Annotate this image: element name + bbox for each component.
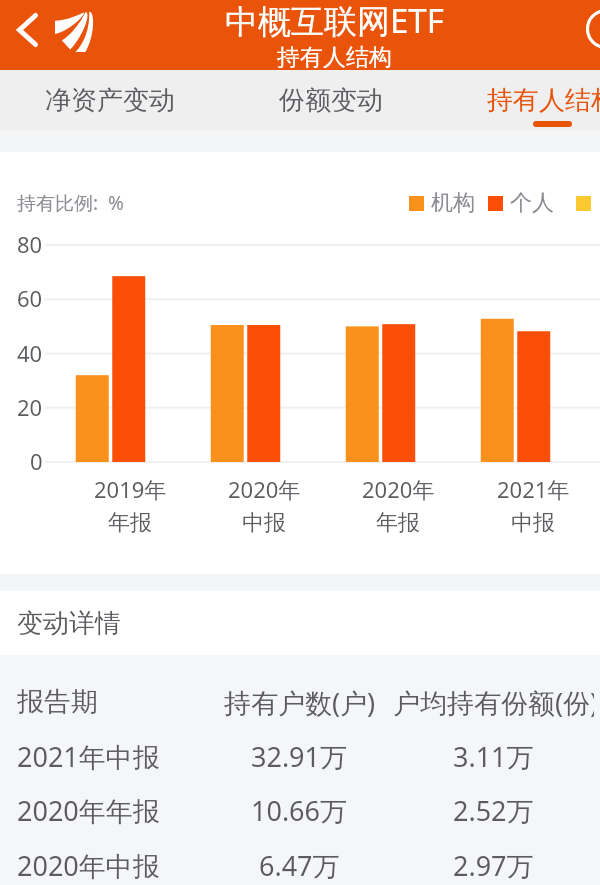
button[interactable]: 报告期 — [0, 675, 600, 729]
staticText: 2020年 — [362, 474, 435, 504]
staticText: 2020年中报 — [17, 847, 160, 884]
staticText: 报告期 — [17, 685, 98, 719]
staticText: 持有人结构 — [487, 84, 600, 117]
staticText: 个人 — [510, 189, 554, 217]
staticText: 80 — [17, 229, 43, 259]
button[interactable]: 份额变动 — [241, 70, 421, 130]
staticText: 中报 — [242, 509, 286, 537]
button[interactable]: 2020年中报 — [0, 838, 600, 885]
staticText: 中报 — [511, 509, 555, 537]
button[interactable]: 2020年年报 — [0, 783, 600, 837]
button[interactable]: Back — [7, 10, 47, 50]
staticText: 3.11万 — [453, 738, 534, 775]
button[interactable]: 净资产变动 — [20, 70, 200, 130]
staticText: 机构 — [431, 189, 475, 217]
staticText: 2021年中报 — [17, 738, 160, 775]
staticText: 2019年 — [94, 474, 167, 504]
staticText: 持有比例: % — [17, 190, 124, 216]
button[interactable]: Help — [582, 5, 600, 53]
staticText: 20 — [17, 392, 43, 422]
staticText: 32.91万 — [251, 738, 348, 775]
button[interactable]: App logo — [52, 8, 96, 54]
staticText: 变动详情 — [17, 607, 121, 640]
staticText: 持有户数(户) — [224, 684, 376, 721]
button[interactable]: 持有人结构 — [462, 70, 600, 130]
staticText: 10.66万 — [251, 792, 348, 829]
staticText: 持有人结构 — [277, 43, 392, 68]
staticText: 年报 — [108, 509, 152, 537]
staticText: 60 — [17, 283, 43, 313]
staticText: 0 — [30, 446, 43, 476]
staticText: 份额变动 — [279, 84, 383, 117]
staticText: 2021年 — [497, 474, 570, 504]
staticText: 6.47万 — [259, 847, 340, 884]
staticText: 2020年 — [228, 474, 301, 504]
staticText: 净资产变动 — [45, 84, 175, 117]
staticText: 户均持有份额(份) — [393, 684, 594, 721]
staticText: 中概互联网ETF — [225, 0, 444, 43]
staticText: 40 — [17, 338, 43, 368]
staticText: 年报 — [376, 509, 420, 537]
staticText: 2020年年报 — [17, 792, 160, 829]
staticText: 2.97万 — [453, 847, 534, 884]
staticText: 2.52万 — [453, 792, 534, 829]
button[interactable]: 2021年中报 — [0, 729, 600, 783]
